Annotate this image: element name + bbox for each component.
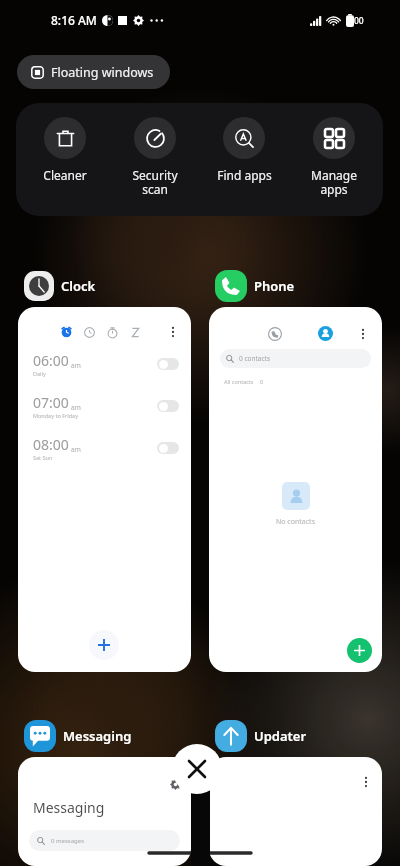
staticText: am: [71, 403, 81, 412]
button[interactable]: Toggle alarm: [157, 400, 179, 412]
button[interactable]: 06:00: [18, 307, 191, 672]
staticText: 0 contacts: [239, 354, 271, 363]
button[interactable]: Settings: [18, 757, 191, 866]
staticText: No contacts: [276, 517, 315, 527]
staticText: Clock: [61, 277, 96, 295]
button[interactable]: More options: [209, 757, 382, 866]
button[interactable]: Messaging: [24, 719, 132, 753]
button[interactable]: Security scan: [114, 117, 196, 198]
staticText: 00: [354, 15, 364, 27]
button[interactable]: 0 contacts: [209, 307, 382, 672]
staticText: Daily: [33, 370, 46, 377]
staticText: Find apps: [217, 167, 272, 183]
button[interactable]: Find apps: [203, 117, 285, 183]
staticText: Updater: [254, 727, 307, 745]
staticText: 06:00: [33, 351, 69, 370]
staticText: 8:16 AM: [51, 12, 97, 28]
button[interactable]: Cleaner: [24, 117, 106, 183]
button[interactable]: Phone: [215, 269, 295, 303]
staticText: Floating windows: [51, 64, 154, 81]
staticText: 0: [260, 378, 264, 385]
button[interactable]: 0 contacts: [220, 349, 371, 368]
button[interactable]: Settings: [170, 779, 181, 790]
button[interactable]: Close: [172, 744, 222, 794]
button[interactable]: 0 messages: [29, 830, 180, 851]
staticText: 08:00: [33, 435, 69, 454]
staticText: All contacts: [224, 378, 254, 385]
button[interactable]: Clock: [24, 269, 96, 303]
button[interactable]: Updater: [215, 719, 307, 753]
staticText: Cleaner: [43, 167, 87, 183]
staticText: Messaging: [33, 798, 105, 817]
button[interactable]: More options: [360, 776, 372, 788]
staticText: Manage apps: [311, 167, 357, 198]
button[interactable]: Add contact: [347, 638, 372, 663]
staticText: am: [71, 445, 81, 454]
button[interactable]: Add alarm: [89, 630, 119, 660]
staticText: Sat Sun: [33, 454, 53, 461]
button[interactable]: Floating windows: [17, 55, 170, 89]
staticText: Messaging: [63, 727, 132, 745]
staticText: Monday to Friday: [33, 412, 78, 419]
button[interactable]: Toggle alarm: [157, 442, 179, 454]
staticText: 0 messages: [51, 837, 85, 845]
staticText: Phone: [254, 277, 295, 295]
staticText: Security scan: [132, 167, 178, 198]
button[interactable]: Manage apps: [293, 117, 375, 198]
button[interactable]: Toggle alarm: [157, 358, 179, 370]
staticText: am: [71, 361, 81, 370]
staticText: 07:00: [33, 393, 69, 412]
